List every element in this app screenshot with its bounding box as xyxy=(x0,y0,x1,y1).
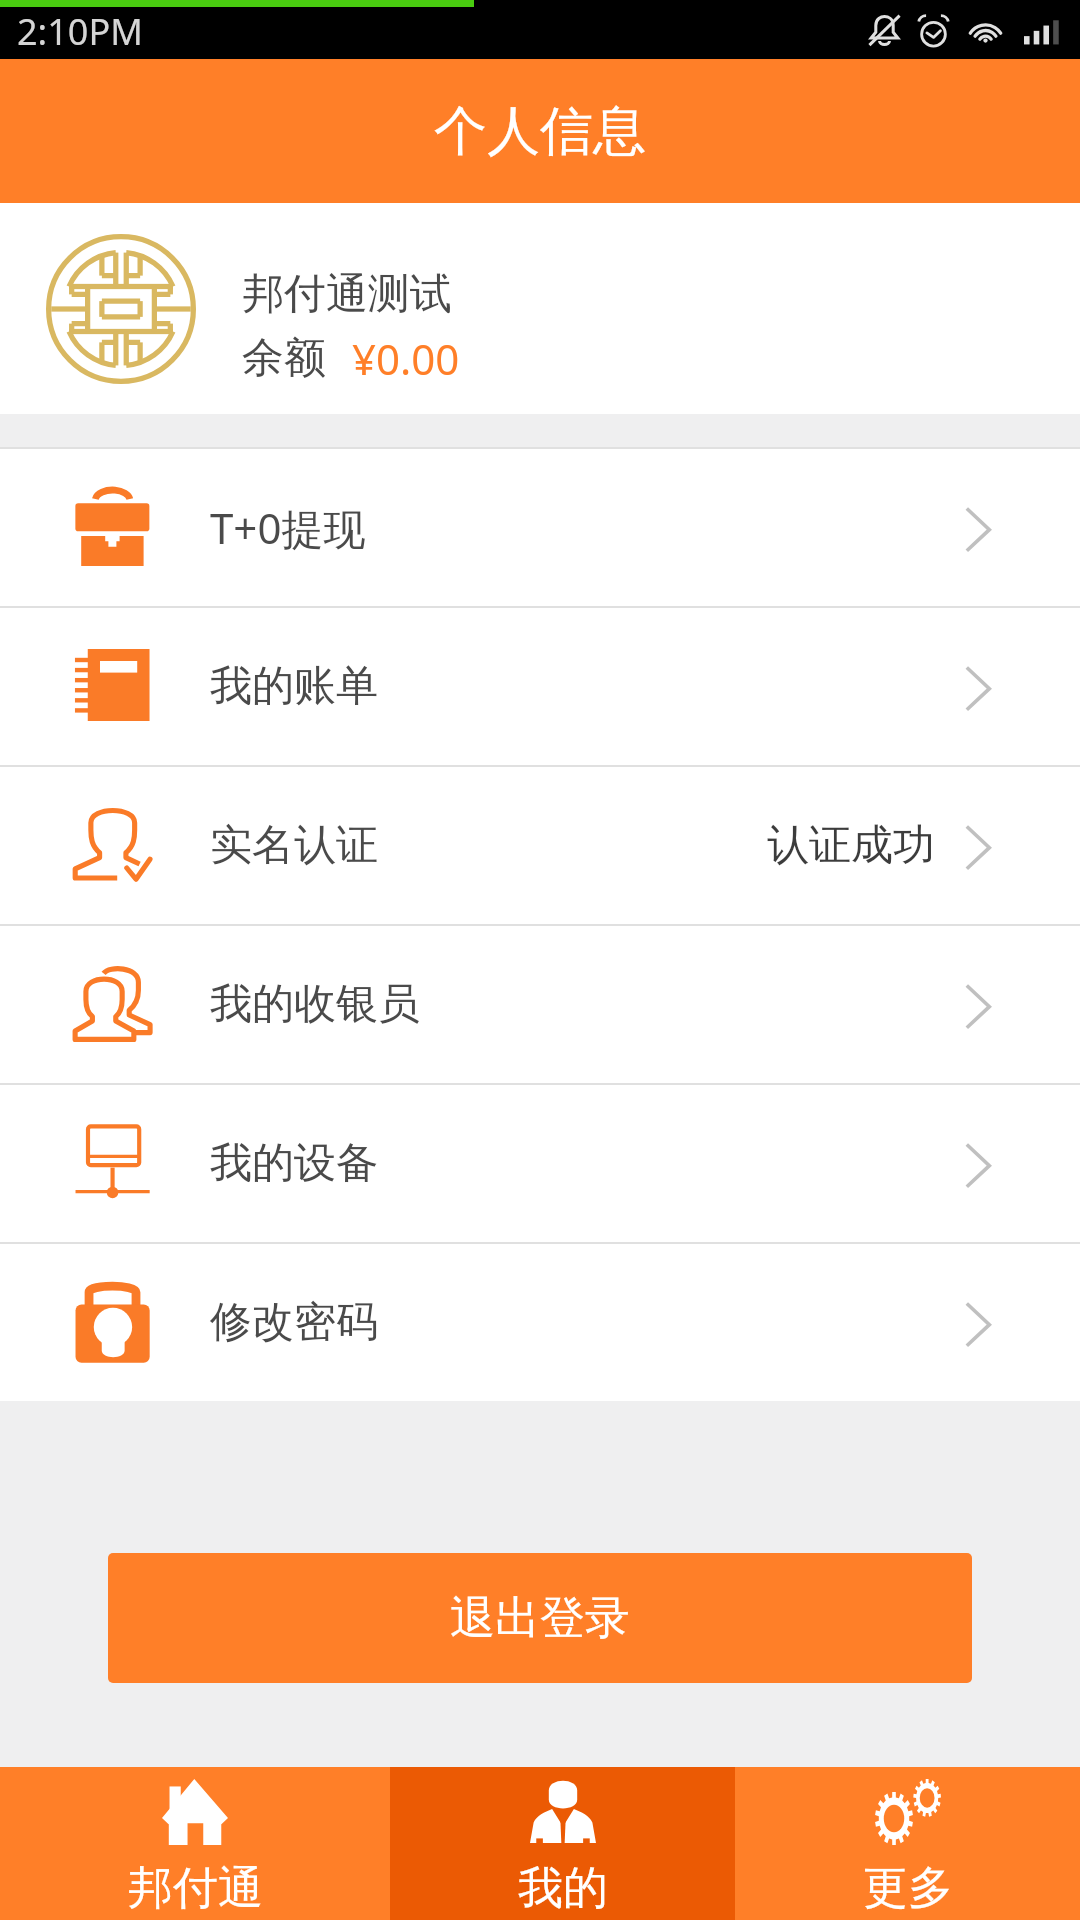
staticText: 我的设备 xyxy=(210,1137,378,1190)
staticText: 认证成功 xyxy=(767,819,935,872)
button[interactable]: 退出登录 xyxy=(108,1553,972,1683)
staticText: 邦付通测试 xyxy=(242,268,452,321)
staticText: 我的账单 xyxy=(210,660,378,713)
button[interactable]: 我的 xyxy=(390,1767,735,1920)
button[interactable]: 邦付通测试 xyxy=(0,203,1080,414)
staticText: 更多 xyxy=(863,1860,953,1917)
staticText: 修改密码 xyxy=(210,1296,378,1349)
staticText: ¥0.00 xyxy=(352,330,460,387)
button[interactable]: 我的收银员 xyxy=(0,926,1080,1083)
button[interactable]: 邦付通 xyxy=(0,1767,390,1920)
staticText: 余额 xyxy=(242,332,326,385)
button[interactable]: 修改密码 xyxy=(0,1244,1080,1401)
staticText: 实名认证 xyxy=(210,819,378,872)
staticText: 个人信息 xyxy=(434,98,646,165)
staticText: 我的 xyxy=(518,1860,608,1917)
button[interactable]: 更多 xyxy=(735,1767,1080,1920)
staticText: T+0提现 xyxy=(210,499,366,556)
button[interactable]: 我的设备 xyxy=(0,1085,1080,1242)
button[interactable]: 实名认证 xyxy=(0,767,1080,924)
staticText: 我的收银员 xyxy=(210,978,420,1031)
button[interactable]: 我的账单 xyxy=(0,608,1080,765)
staticText: 2:10PM xyxy=(17,7,143,56)
staticText: 退出登录 xyxy=(450,1590,630,1647)
button[interactable]: T+0提现 xyxy=(0,449,1080,606)
staticText: 邦付通 xyxy=(128,1860,263,1917)
